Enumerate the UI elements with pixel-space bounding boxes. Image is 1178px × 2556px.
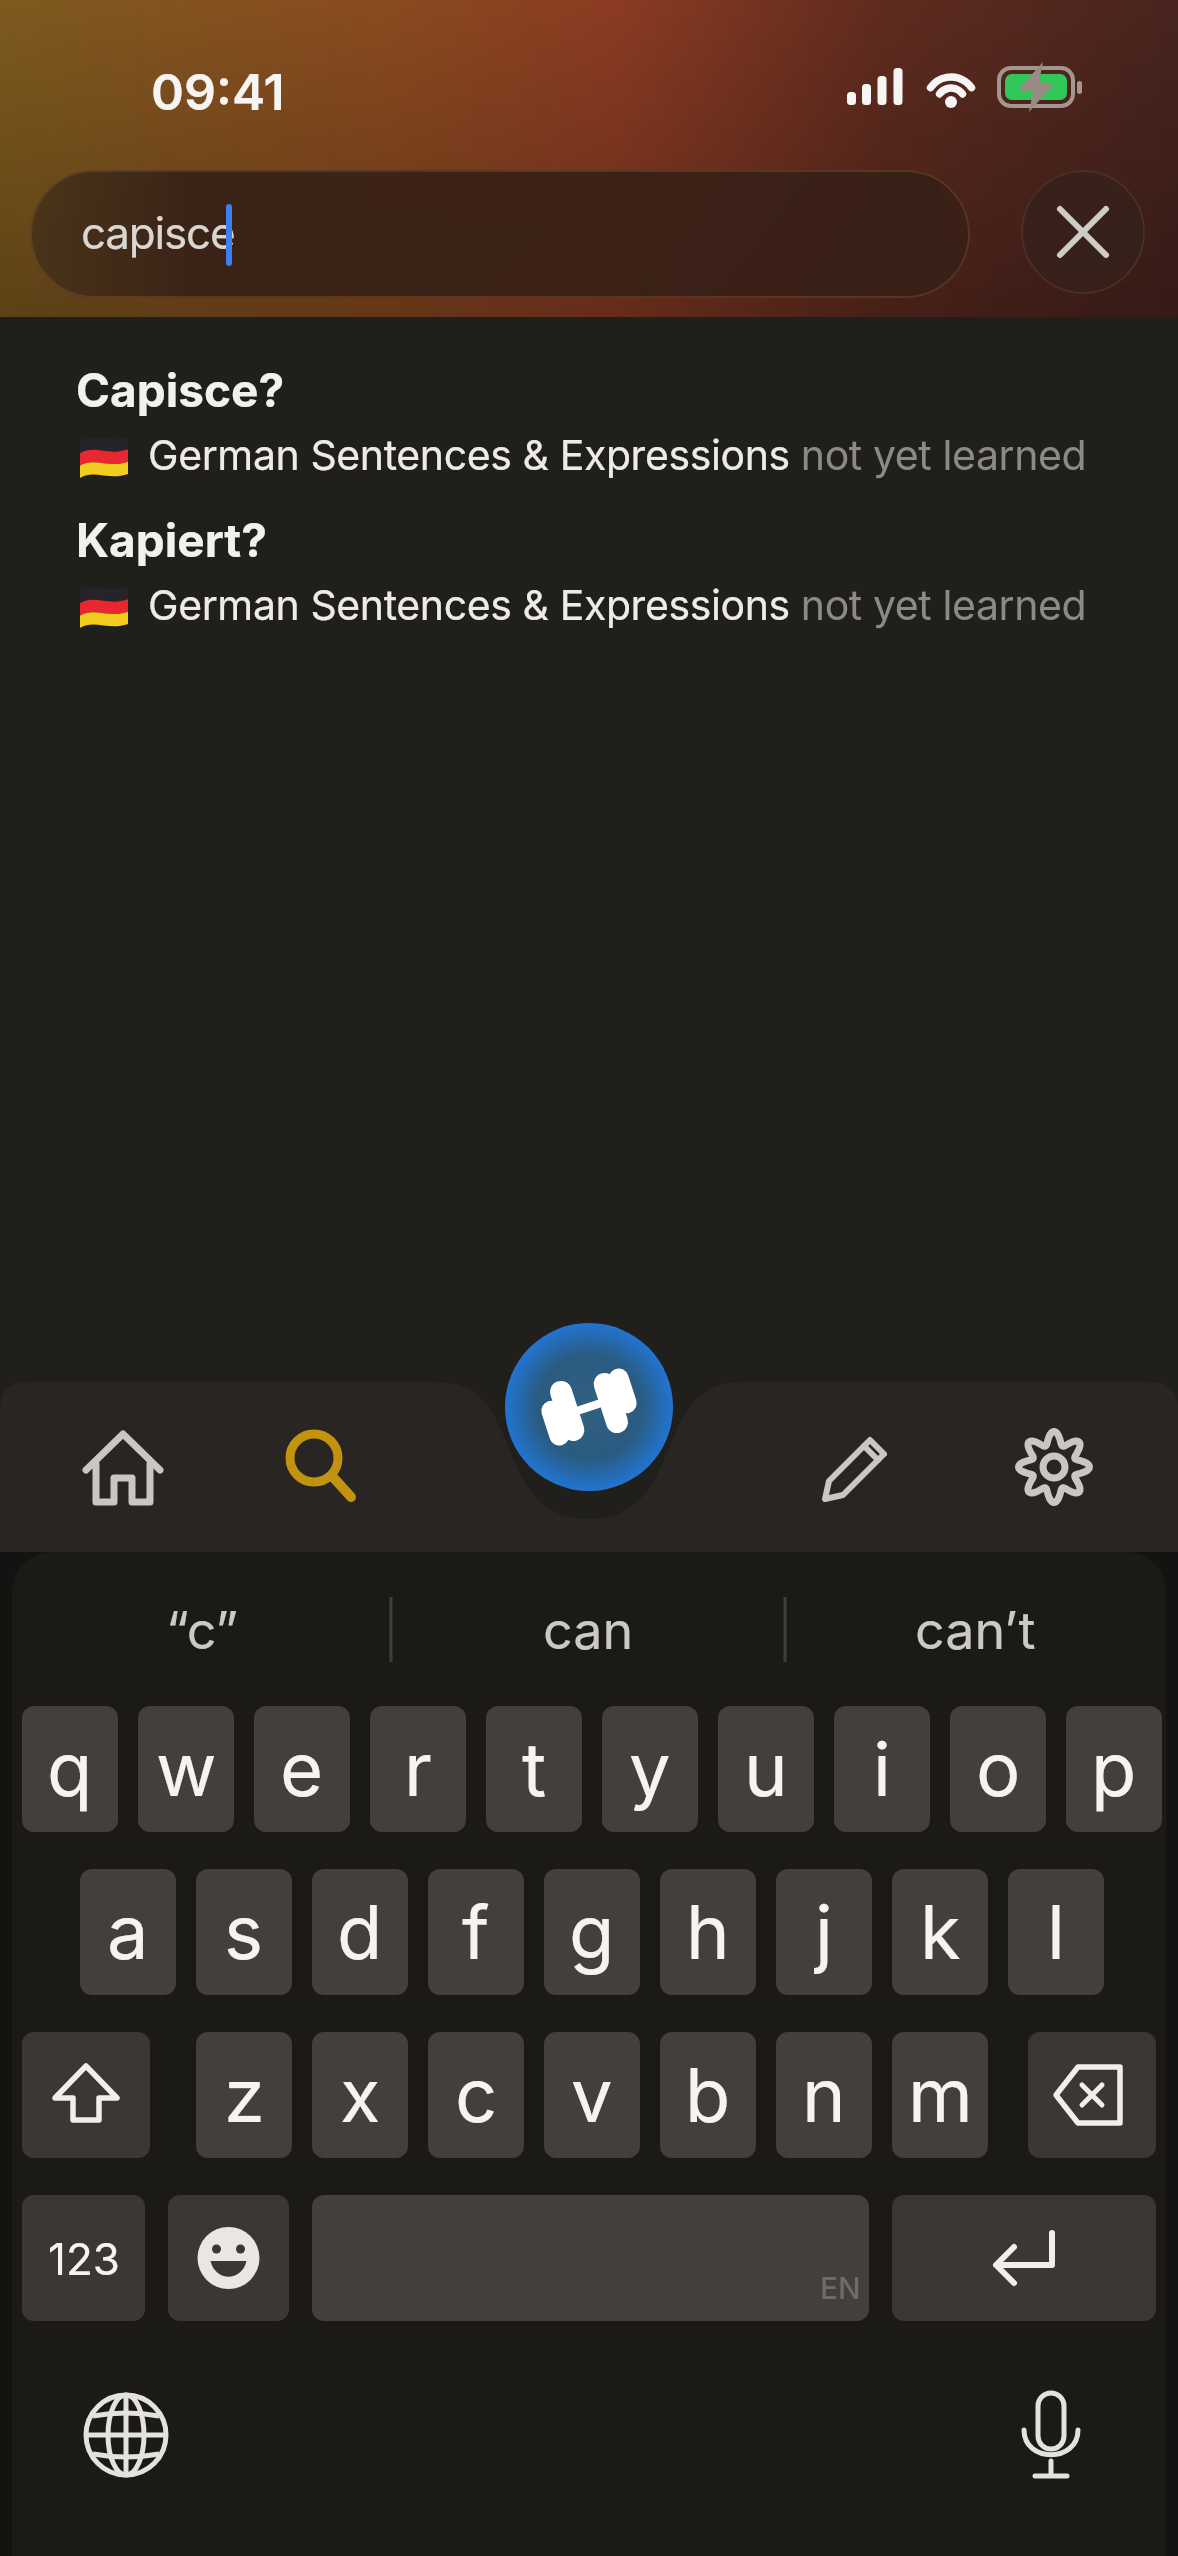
button[interactable]: [1028, 2032, 1156, 2158]
button[interactable]: Kapiert?: [30, 505, 1148, 653]
button[interactable]: [22, 2032, 150, 2158]
staticText: 123: [48, 2232, 120, 2285]
button[interactable]: 123: [22, 2195, 145, 2321]
button[interactable]: s: [196, 1869, 292, 1995]
staticText: x: [340, 2050, 381, 2140]
staticText: y: [629, 1724, 671, 1814]
button[interactable]: [272, 1417, 372, 1517]
staticText: German Sentences & Expressions not yet l…: [148, 580, 1087, 630]
staticText: s: [224, 1887, 264, 1977]
staticText: l: [1047, 1887, 1065, 1977]
button[interactable]: can: [391, 1590, 785, 1670]
button[interactable]: o: [950, 1706, 1046, 1832]
button[interactable]: [807, 1417, 907, 1517]
button[interactable]: Capisce?: [30, 355, 1148, 503]
staticText: m: [908, 2050, 973, 2140]
staticText: k: [920, 1887, 961, 1977]
button[interactable]: i: [834, 1706, 930, 1832]
staticText: can’t: [915, 1599, 1036, 1662]
button[interactable]: [312, 2195, 869, 2321]
button[interactable]: p: [1066, 1706, 1162, 1832]
staticText: c: [455, 2050, 498, 2140]
button[interactable]: t: [486, 1706, 582, 1832]
staticText: e: [280, 1724, 324, 1814]
staticText: German Sentences & Expressions not yet l…: [148, 430, 1087, 480]
button[interactable]: f: [428, 1869, 524, 1995]
staticText: capisce: [81, 206, 235, 259]
button[interactable]: j: [776, 1869, 872, 1995]
staticText: g: [569, 1887, 615, 1977]
staticText: o: [976, 1724, 1021, 1814]
staticText: 09:41: [151, 62, 285, 122]
staticText: EN: [820, 2270, 861, 2306]
button[interactable]: y: [602, 1706, 698, 1832]
button[interactable]: q: [22, 1706, 118, 1832]
staticText: can: [543, 1599, 634, 1662]
button[interactable]: w: [138, 1706, 234, 1832]
staticText: t: [522, 1724, 547, 1814]
button[interactable]: u: [718, 1706, 814, 1832]
button[interactable]: z: [196, 2032, 292, 2158]
button[interactable]: d: [312, 1869, 408, 1995]
staticText: i: [873, 1724, 891, 1814]
button[interactable]: [1004, 1417, 1104, 1517]
button[interactable]: [73, 1417, 173, 1517]
button[interactable]: a: [80, 1869, 176, 1995]
staticText: n: [802, 2050, 846, 2140]
staticText: u: [744, 1724, 788, 1814]
button[interactable]: e: [254, 1706, 350, 1832]
button[interactable]: m: [892, 2032, 988, 2158]
staticText: h: [686, 1887, 730, 1977]
staticText: d: [337, 1887, 383, 1977]
button[interactable]: c: [428, 2032, 524, 2158]
staticText: p: [1091, 1724, 1137, 1814]
staticText: z: [224, 2050, 265, 2140]
button[interactable]: h: [660, 1869, 756, 1995]
staticText: q: [47, 1724, 93, 1814]
staticText: Capisce?: [76, 362, 285, 418]
staticText: r: [404, 1724, 432, 1814]
staticText: f: [462, 1887, 490, 1977]
button[interactable]: n: [776, 2032, 872, 2158]
button[interactable]: l: [1008, 1869, 1104, 1995]
staticText: j: [815, 1887, 833, 1977]
button[interactable]: x: [312, 2032, 408, 2158]
staticText: Kapiert?: [76, 512, 267, 568]
button[interactable]: r: [370, 1706, 466, 1832]
button[interactable]: can’t: [785, 1590, 1165, 1670]
staticText: w: [156, 1724, 217, 1814]
staticText: b: [685, 2050, 731, 2140]
button[interactable]: v: [544, 2032, 640, 2158]
button[interactable]: capisce: [30, 170, 970, 298]
button[interactable]: [1021, 170, 1145, 294]
button[interactable]: [505, 1323, 673, 1491]
staticText: v: [571, 2050, 613, 2140]
button[interactable]: [1001, 2385, 1101, 2485]
button[interactable]: g: [544, 1869, 640, 1995]
button[interactable]: [76, 2385, 176, 2485]
button[interactable]: [892, 2195, 1156, 2321]
button[interactable]: “c”: [13, 1590, 391, 1670]
staticText: “c”: [166, 1599, 239, 1662]
button[interactable]: k: [892, 1869, 988, 1995]
button[interactable]: [168, 2195, 289, 2321]
staticText: a: [107, 1887, 149, 1977]
button[interactable]: b: [660, 2032, 756, 2158]
